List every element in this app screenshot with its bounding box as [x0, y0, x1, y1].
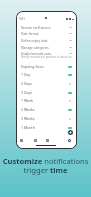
button[interactable]: Toggle: [68, 65, 72, 68]
staticText: 2 Days: [21, 81, 32, 86]
button[interactable]: 2 Days: [21, 80, 72, 87]
button[interactable]: Toggle: [68, 99, 72, 102]
staticText: 1 Day: [21, 72, 31, 77]
staticText: Date format: [21, 32, 39, 36]
staticText: Define expiry date: [21, 39, 48, 43]
staticText: 9:41: [19, 17, 25, 21]
button[interactable]: Enable barcode scan: [21, 51, 72, 56]
button[interactable]: Toggle: [68, 73, 72, 76]
staticText: 1 Month: [21, 125, 35, 130]
button[interactable]: Search: [34, 139, 37, 142]
button[interactable]: 1 Week: [21, 97, 72, 104]
button[interactable]: 2 Weeks: [21, 106, 72, 113]
button[interactable]: Menu: [20, 139, 23, 142]
staticText: Manage categories: [21, 46, 49, 50]
button[interactable]: Toggle: [68, 108, 72, 111]
button[interactable]: Toggle: [68, 117, 72, 120]
staticText: Enable barcode scan: [21, 52, 51, 56]
button[interactable]: Saved: [46, 139, 49, 142]
button[interactable]: Manage categories: [21, 45, 72, 50]
button[interactable]: Toggle: [68, 91, 72, 94]
button[interactable]: Toggle: [68, 82, 72, 85]
button[interactable]: 3 Weeks: [21, 115, 72, 122]
staticText: Receive notifications: [21, 26, 51, 30]
button[interactable]: 1 Month: [21, 124, 72, 131]
staticText: 2 Weeks: [21, 107, 35, 112]
staticText: 1 Week: [21, 98, 33, 103]
staticText: 3 Days: [21, 90, 32, 95]
button[interactable]: Add: [68, 130, 73, 135]
button[interactable]: Date format: [21, 31, 72, 36]
staticText: Customize notifications trigger time: [1, 156, 90, 176]
button[interactable]: Toggle: [68, 126, 72, 129]
button[interactable]: Define expiry date: [21, 38, 72, 43]
staticText: Expiring Soon: [21, 64, 44, 69]
button[interactable]: Profile: [68, 139, 71, 142]
staticText: 3 Weeks: [21, 116, 35, 121]
staticText: Notify me when a product is about to exp…: [21, 55, 72, 59]
button[interactable]: Receive notifications: [21, 25, 72, 30]
button[interactable]: Expiring Soon: [21, 63, 72, 70]
button[interactable]: 1 Day: [21, 71, 72, 78]
button[interactable]: 3 Days: [21, 89, 72, 96]
